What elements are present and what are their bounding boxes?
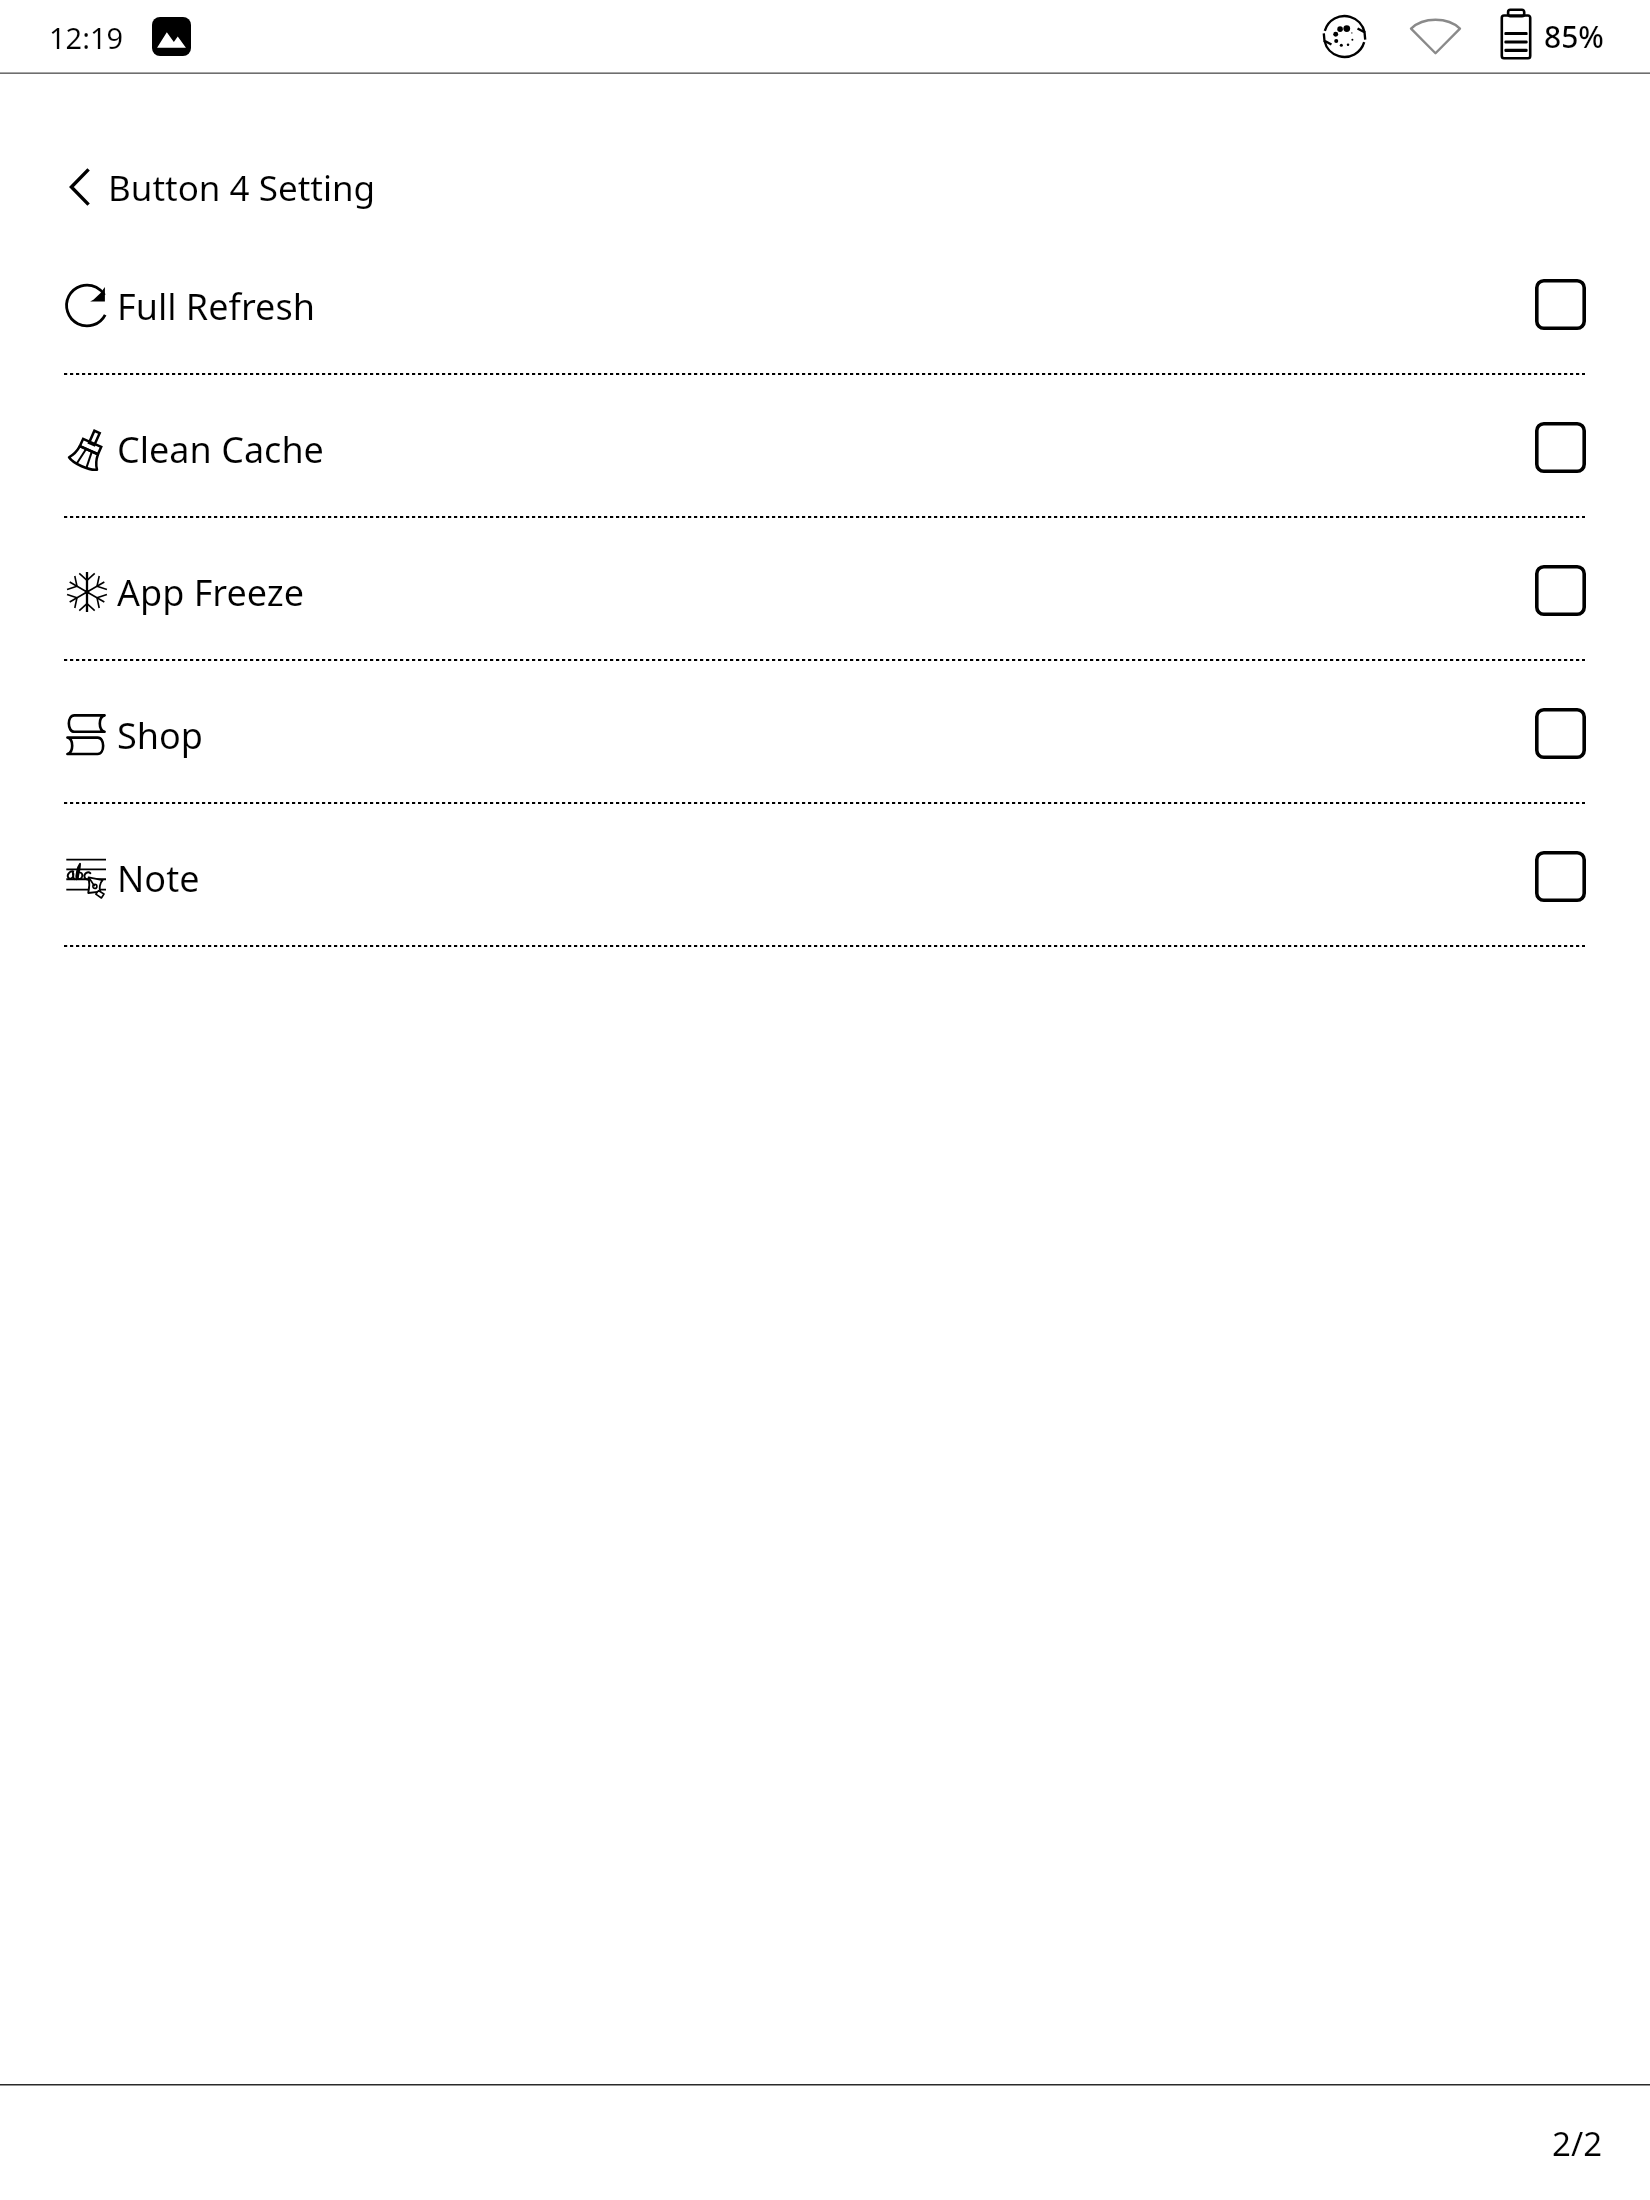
- staticText: Clean Cache: [117, 425, 324, 474]
- staticText: Button 4 Setting: [108, 164, 376, 212]
- staticText: Shop: [117, 711, 203, 760]
- button[interactable]: Back: [0, 77, 1650, 232]
- staticText: 85%: [1544, 16, 1604, 57]
- button[interactable]: Full Refresh: [0, 232, 1650, 374]
- staticText: 2/2: [1552, 2121, 1603, 2166]
- button[interactable]: Toggle App Freeze: [1535, 565, 1586, 616]
- staticText: Note: [117, 854, 200, 903]
- staticText: Full Refresh: [117, 282, 315, 331]
- button[interactable]: Shop: [0, 661, 1650, 803]
- button[interactable]: Toggle Clean Cache: [1535, 422, 1586, 473]
- button[interactable]: Note: [0, 804, 1650, 946]
- other: Screenshot: [152, 17, 191, 56]
- staticText: App Freeze: [117, 568, 304, 617]
- button[interactable]: Clean Cache: [0, 375, 1650, 517]
- staticText: 12:19: [49, 18, 124, 57]
- button[interactable]: Toggle Full Refresh: [1535, 279, 1586, 330]
- button[interactable]: Toggle Note: [1535, 851, 1586, 902]
- button[interactable]: App Freeze: [0, 518, 1650, 660]
- button[interactable]: Toggle Shop: [1535, 708, 1586, 759]
- button[interactable]: Back: [50, 149, 112, 227]
